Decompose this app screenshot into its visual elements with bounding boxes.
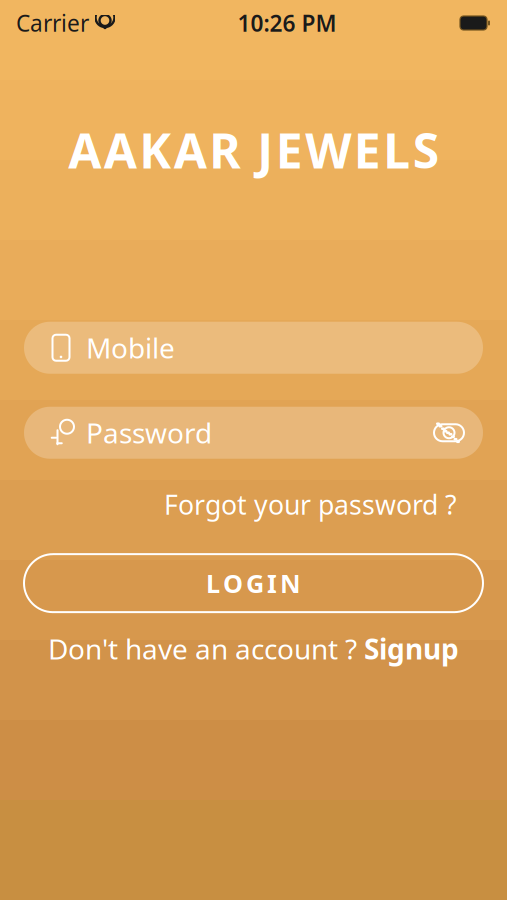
staticText: AAKAR JEWELS bbox=[68, 118, 439, 182]
button[interactable]: Forgot your password ? bbox=[0, 459, 507, 528]
button[interactable]: Show password bbox=[433, 419, 465, 447]
staticText: Forgot your password ? bbox=[164, 487, 457, 522]
button[interactable]: LOGIN bbox=[24, 554, 483, 612]
button[interactable]: Don't have an account ? bbox=[24, 612, 483, 667]
staticText: Carrier bbox=[16, 8, 89, 38]
staticText: Don't have an account ? bbox=[48, 630, 364, 667]
button[interactable]: Password bbox=[24, 407, 483, 459]
staticText: Signup bbox=[364, 630, 459, 667]
staticText: 10:26 PM bbox=[237, 8, 336, 38]
staticText: Mobile bbox=[86, 329, 175, 366]
button[interactable]: Mobile bbox=[24, 322, 483, 374]
staticText: LOGIN bbox=[206, 566, 301, 600]
staticText: Password bbox=[86, 414, 212, 451]
